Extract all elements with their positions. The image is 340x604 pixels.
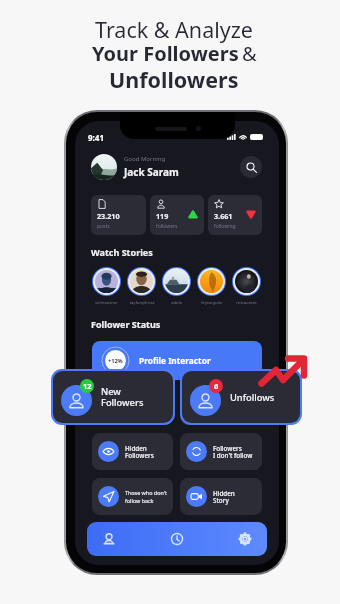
staticText: Jack Saram: [124, 165, 179, 179]
staticText: Follower Status: [91, 318, 161, 330]
button[interactable]: tayfunyilmaz: [127, 267, 156, 306]
staticText: Unfollows: [213, 402, 243, 411]
button[interactable]: Those who don't follow back: [92, 478, 173, 515]
staticText: New Followers: [101, 385, 144, 409]
staticText: adela: [171, 300, 182, 306]
staticText: Followers I don't follow: [213, 444, 253, 460]
staticText: &: [242, 40, 257, 67]
staticText: Your Followers: [92, 40, 239, 67]
staticText: restaurant: [236, 300, 257, 306]
button[interactable]: 3.661: [208, 195, 262, 235]
staticText: feyiseguler: [201, 300, 223, 306]
button[interactable]: History: [166, 528, 188, 550]
staticText: New Followers: [125, 399, 154, 415]
button[interactable]: selmaosner: [92, 267, 121, 306]
staticText: 12: [83, 381, 92, 391]
button[interactable]: 119: [150, 195, 204, 235]
button[interactable]: 12: [53, 371, 173, 423]
staticText: 23.210: [97, 211, 120, 221]
staticText: 119: [156, 211, 169, 221]
staticText: 6: [214, 381, 219, 391]
button[interactable]: Followers I don't follow: [180, 433, 262, 470]
staticText: Hidden Story: [213, 489, 235, 505]
staticText: Profile Interactor: [139, 355, 211, 366]
button[interactable]: New Followers: [92, 388, 173, 425]
staticText: Hidden Followers: [125, 444, 154, 460]
staticText: 3.661: [214, 211, 233, 221]
staticText: tayfunyilmaz: [129, 300, 155, 306]
button[interactable]: feyiseguler: [197, 267, 226, 306]
staticText: Good Morning: [124, 155, 166, 163]
button[interactable]: Hidden Story: [180, 478, 262, 515]
button[interactable]: Search: [240, 156, 262, 178]
button[interactable]: 23.210: [91, 195, 146, 235]
staticText: Those who don't follow back: [125, 489, 167, 505]
button[interactable]: Settings: [234, 528, 256, 550]
button[interactable]: 6: [182, 371, 300, 423]
button[interactable]: Hidden Followers: [92, 433, 173, 470]
staticText: +12%: [108, 357, 123, 365]
button[interactable]: +12%: [92, 341, 262, 380]
button[interactable]: Profile: [98, 528, 120, 550]
staticText: Unfollowers: [109, 65, 239, 94]
staticText: Track & Analyze: [95, 15, 253, 44]
staticText: Watch Stories: [91, 246, 153, 258]
staticText: followers: [156, 223, 178, 230]
staticText: 9:41: [88, 132, 104, 143]
staticText: following: [214, 223, 236, 230]
staticText: posts: [97, 223, 110, 230]
button[interactable]: adela: [162, 267, 191, 306]
button[interactable]: Unfollows: [180, 388, 262, 425]
button[interactable]: restaurant: [232, 267, 261, 306]
staticText: selmaosner: [95, 300, 118, 306]
staticText: Unfollows: [230, 391, 275, 404]
